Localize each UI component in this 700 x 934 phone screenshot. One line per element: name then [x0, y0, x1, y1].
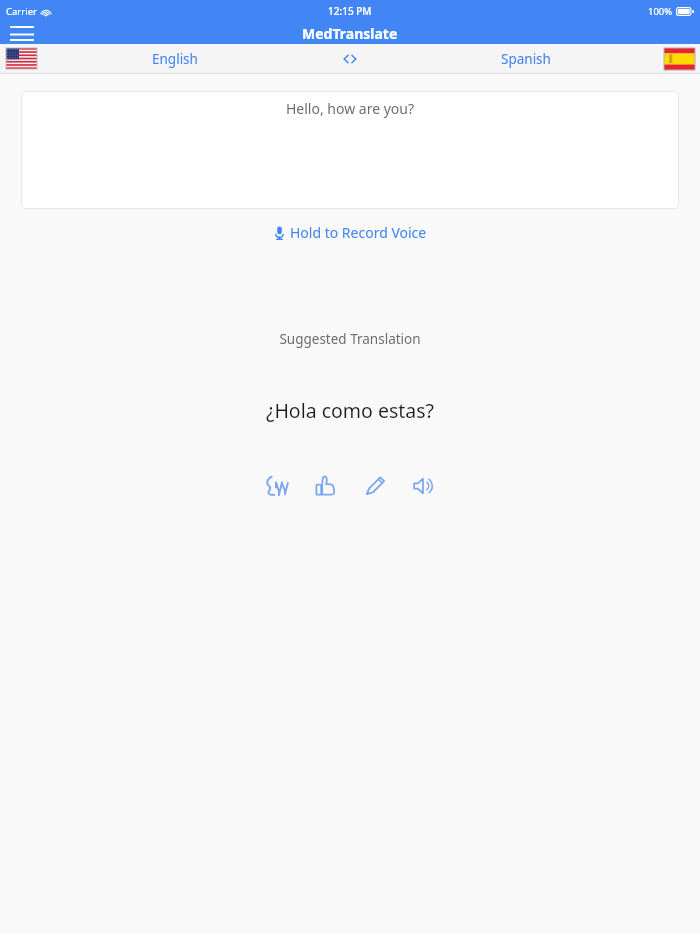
- button[interactable]: Source language flag: United States: [6, 48, 37, 69]
- button[interactable]: Play audio: [405, 467, 443, 505]
- staticText: Hold to Record Voice: [290, 223, 427, 242]
- button[interactable]: Hold to Record Voice: [266, 218, 435, 247]
- staticText: Hello, how are you?: [21, 99, 679, 118]
- staticText: 12:15 PM: [328, 4, 372, 18]
- button[interactable]: Menu: [0, 22, 44, 44]
- button[interactable]: Spanish: [395, 44, 656, 73]
- staticText: MedTranslate: [302, 24, 398, 43]
- button[interactable]: Swap languages: [305, 44, 395, 73]
- staticText: 100%: [648, 5, 673, 18]
- staticText: Carrier: [6, 5, 37, 18]
- button[interactable]: Target language flag: Spain: [664, 48, 695, 70]
- button[interactable]: Speak translation aloud: [258, 467, 296, 505]
- button[interactable]: Mark translation as good: [307, 467, 345, 505]
- staticText: English: [152, 50, 198, 68]
- button[interactable]: Edit translation: [356, 467, 394, 505]
- staticText: Spanish: [501, 50, 551, 68]
- staticText: Suggested Translation: [0, 330, 700, 348]
- button[interactable]: Hello, how are you?: [21, 91, 679, 209]
- button[interactable]: English: [44, 44, 305, 73]
- staticText: ¿Hola como estas?: [0, 397, 700, 424]
